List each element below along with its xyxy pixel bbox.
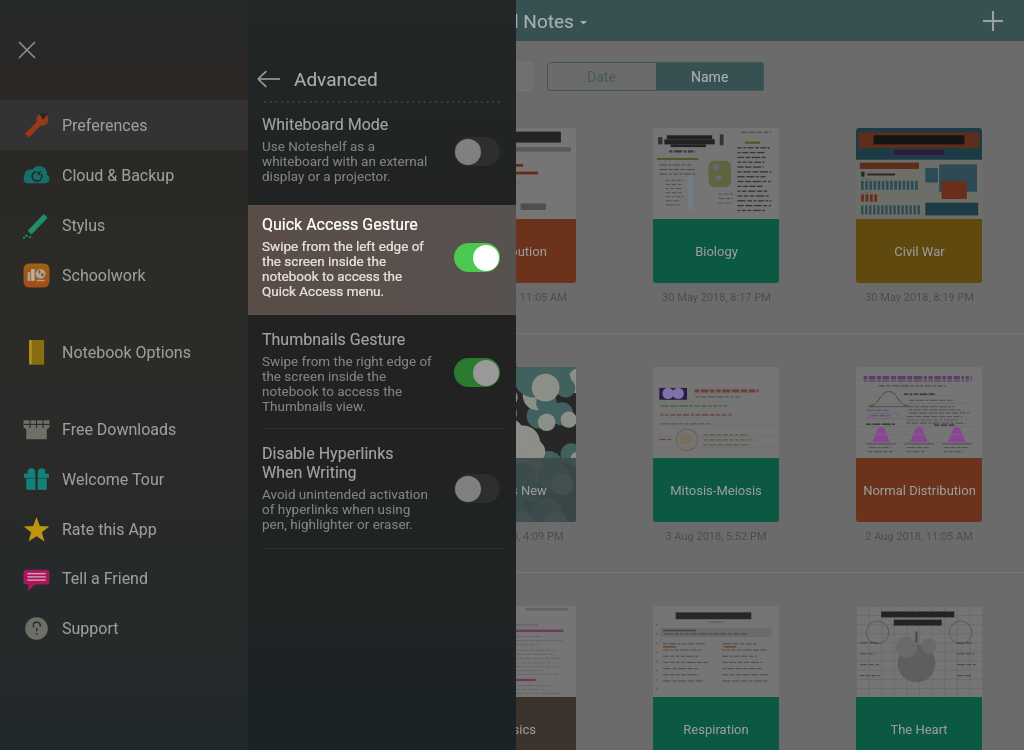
button[interactable]: New notebook bbox=[971, 0, 1015, 41]
staticText: The Heart bbox=[890, 722, 948, 737]
staticText: Civil War bbox=[894, 244, 945, 259]
button[interactable]: Date bbox=[547, 62, 656, 91]
staticText: Advanced bbox=[294, 68, 378, 90]
staticText: Stylus bbox=[62, 216, 106, 235]
button[interactable]: Free Downloads bbox=[0, 404, 248, 454]
staticText: Thumbnails Gesture bbox=[262, 330, 406, 349]
staticText: Name bbox=[691, 69, 729, 85]
button[interactable]: The Heart bbox=[856, 606, 982, 750]
button[interactable]: Cloud & Backup bbox=[0, 150, 248, 200]
button[interactable]: Thumbnails Gesture bbox=[248, 320, 516, 428]
button[interactable]: Schoolwork bbox=[0, 250, 248, 300]
button[interactable]: Close settings bbox=[2, 25, 52, 75]
staticText: Swipe from the left edge of the screen i… bbox=[262, 238, 425, 299]
staticText: Avoid unintended activation of hyperlink… bbox=[262, 486, 429, 532]
staticText: Normal Distribution bbox=[863, 483, 976, 498]
button[interactable]: Stylus bbox=[0, 200, 248, 250]
staticText: What's New bbox=[479, 483, 547, 498]
staticText: 3 Aug 2018, 5:52 PM bbox=[665, 530, 767, 543]
button[interactable]: Normal Distribution bbox=[856, 367, 982, 522]
staticText: 30 May 2018, 8:17 PM bbox=[662, 291, 771, 304]
button[interactable]: Biology bbox=[653, 128, 779, 283]
button[interactable]: Toggle setting bbox=[454, 243, 500, 272]
staticText: Free Downloads bbox=[62, 420, 177, 439]
staticText: Support bbox=[62, 619, 119, 638]
button[interactable]: Name bbox=[656, 62, 764, 91]
staticText: 2 Aug 2018, 11:05 AM bbox=[459, 291, 567, 304]
staticText: Disable Hyperlinks When Writing bbox=[262, 444, 394, 482]
button[interactable]: Toggle setting bbox=[454, 137, 500, 166]
button[interactable]: Tell a Friend bbox=[0, 553, 248, 603]
button[interactable]: Civil War bbox=[856, 128, 982, 283]
staticText: Swipe from the right edge of the screen … bbox=[262, 353, 432, 414]
button[interactable]: Back bbox=[248, 58, 290, 100]
button[interactable]: Respiration bbox=[653, 606, 779, 750]
button[interactable]: Mitosis-Meiosis bbox=[653, 367, 779, 522]
button[interactable]: Welcome Tour bbox=[0, 454, 248, 504]
button[interactable] bbox=[430, 62, 533, 91]
staticText: Date bbox=[587, 69, 616, 85]
staticText: Cloud & Backup bbox=[62, 166, 175, 185]
staticText: Biology bbox=[695, 244, 738, 259]
button[interactable]: Toggle setting bbox=[454, 358, 500, 387]
button[interactable]: Notebook Options bbox=[0, 327, 248, 377]
button[interactable]: Support bbox=[0, 603, 248, 653]
staticText: Whiteboard Mode bbox=[262, 115, 389, 134]
button[interactable]: Disable Hyperlinks When Writing bbox=[248, 434, 516, 548]
button[interactable]: Toggle setting bbox=[454, 474, 500, 503]
staticText: 2 Aug 2018, 11:05 AM bbox=[865, 530, 973, 543]
button[interactable]: Physics bbox=[450, 606, 576, 750]
staticText: Rate this App bbox=[62, 520, 157, 539]
button[interactable]: Distribution bbox=[450, 128, 576, 283]
staticText: All Notes bbox=[497, 10, 574, 32]
button[interactable]: Quick Access Gesture bbox=[248, 205, 516, 315]
staticText: Distribution bbox=[480, 244, 547, 259]
button[interactable]: Preferences bbox=[0, 100, 248, 150]
staticText: Quick Access Gesture bbox=[262, 215, 418, 234]
button[interactable]: Whiteboard Mode bbox=[248, 105, 516, 205]
staticText: Respiration bbox=[683, 722, 749, 737]
staticText: Physics bbox=[491, 722, 536, 737]
staticText: 30 May 2018, 8:19 PM bbox=[865, 291, 974, 304]
button[interactable]: Rate this App bbox=[0, 504, 248, 554]
staticText: Schoolwork bbox=[62, 266, 146, 285]
button[interactable]: What's New bbox=[450, 367, 576, 522]
staticText: Notebook Options bbox=[62, 343, 191, 362]
staticText: 3 Aug 2018, 4:09 PM bbox=[462, 530, 564, 543]
staticText: Mitosis-Meiosis bbox=[670, 483, 762, 498]
staticText: Welcome Tour bbox=[62, 470, 165, 489]
staticText: Preferences bbox=[62, 116, 148, 135]
staticText: Use Noteshelf as a whiteboard with an ex… bbox=[262, 138, 428, 184]
staticText: Tell a Friend bbox=[62, 569, 148, 588]
